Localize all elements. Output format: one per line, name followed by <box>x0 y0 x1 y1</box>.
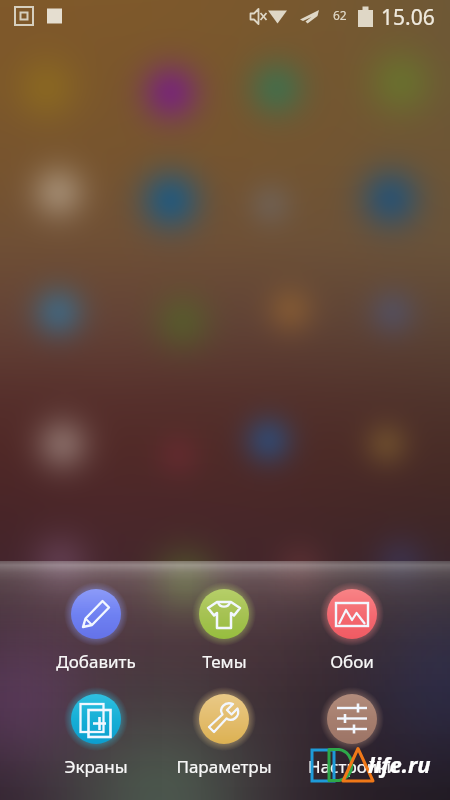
staticText: 62 <box>333 7 347 23</box>
staticText: Обои <box>330 650 374 673</box>
staticText: Экраны <box>64 755 128 778</box>
staticText: Темы <box>202 650 247 673</box>
button[interactable]: Параметры <box>160 687 288 778</box>
staticText: 15.06 <box>381 3 435 32</box>
button[interactable]: Экраны <box>32 687 160 778</box>
button[interactable]: Темы <box>160 582 288 673</box>
button[interactable]: Обои <box>288 582 416 673</box>
staticText: Параметры <box>176 755 272 778</box>
staticText: life.ru <box>368 749 431 779</box>
staticText: Настройки <box>308 755 397 778</box>
button[interactable]: Добавить <box>32 582 160 673</box>
button[interactable]: Настройки <box>288 687 416 778</box>
staticText: Добавить <box>56 650 136 673</box>
